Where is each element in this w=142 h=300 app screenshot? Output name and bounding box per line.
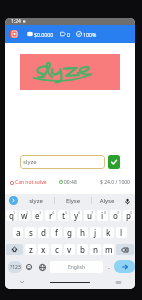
button[interactable]: Backspace (116, 244, 134, 255)
staticText: 7 (91, 210, 94, 215)
button[interactable]: i (97, 210, 108, 221)
staticText: b (80, 244, 85, 255)
button[interactable]: ?123 (8, 261, 22, 273)
button[interactable]: n (90, 244, 101, 255)
staticText: . (108, 262, 110, 272)
staticText: $0.0000 (34, 31, 54, 38)
staticText: 6 (78, 210, 81, 215)
button[interactable]: d (38, 227, 49, 238)
staticText: v (67, 244, 72, 255)
staticText: ?123 (10, 264, 21, 271)
staticText: 3 (39, 210, 42, 215)
staticText: Can not solve (15, 179, 47, 186)
staticText: English (68, 264, 86, 271)
button[interactable]: Enter (114, 260, 135, 273)
button[interactable]: e (32, 210, 43, 221)
button[interactable]: t (58, 210, 69, 221)
button[interactable]: g (64, 227, 75, 238)
staticText: m (105, 244, 113, 255)
staticText: n (93, 244, 99, 255)
staticText: 0 (67, 31, 70, 38)
staticText: l (120, 227, 123, 238)
button[interactable]: Change language (35, 261, 50, 273)
button[interactable]: m (103, 244, 114, 255)
button[interactable]: Emoji (22, 261, 35, 273)
staticText: 1:24 (11, 18, 21, 25)
staticText: q (9, 210, 14, 221)
button[interactable]: Elyse (55, 197, 91, 205)
staticText: 8 (104, 210, 107, 215)
button[interactable]: Voice input (122, 196, 132, 206)
staticText: z (29, 244, 33, 255)
staticText: w (21, 210, 28, 221)
staticText: c (55, 244, 59, 255)
button[interactable]: English (50, 261, 103, 273)
button[interactable]: . (103, 261, 114, 273)
button[interactable]: k (103, 227, 114, 238)
staticText: g (67, 227, 72, 238)
button[interactable]: Shift (6, 244, 23, 255)
button[interactable]: w (19, 210, 30, 221)
staticText: x (41, 244, 46, 255)
staticText: k (106, 227, 111, 238)
staticText: 4 (52, 210, 55, 215)
staticText: f (55, 227, 58, 238)
staticText: 9 (117, 210, 120, 215)
button[interactable]: z (25, 244, 36, 255)
staticText: 5 (65, 210, 68, 215)
button[interactable]: j (90, 227, 101, 238)
staticText: slyze (23, 158, 37, 166)
staticText: t (62, 210, 66, 221)
button[interactable]: f (51, 227, 62, 238)
button[interactable]: Alyse (92, 197, 122, 205)
staticText: 1 (13, 210, 16, 215)
staticText: i (101, 210, 104, 221)
staticText: r (49, 210, 53, 221)
staticText: 0 (130, 210, 133, 215)
button[interactable]: v (64, 244, 75, 255)
staticText: o (113, 210, 118, 221)
staticText: 2 (26, 210, 29, 215)
staticText: s (29, 227, 33, 238)
button[interactable]: Hide keyboard (5, 275, 39, 289)
button[interactable]: h (77, 227, 88, 238)
staticText: 00:48 (64, 179, 77, 186)
button[interactable]: o (110, 210, 121, 221)
staticText: h (80, 227, 86, 238)
button[interactable]: Can not solve (10, 179, 47, 186)
button[interactable]: Switch keyboard (101, 275, 135, 289)
button[interactable]: Submit (108, 155, 120, 169)
button[interactable]: More suggestions (9, 196, 18, 205)
button[interactable]: Stop (10, 30, 18, 38)
button[interactable]: y (71, 210, 82, 221)
button[interactable]: slyze (20, 155, 105, 169)
button[interactable]: x (38, 244, 49, 255)
staticText: j (94, 227, 97, 238)
button[interactable]: l (116, 227, 127, 238)
button[interactable]: b (77, 244, 88, 255)
button[interactable]: q (6, 210, 17, 221)
button[interactable]: s (25, 227, 36, 238)
button[interactable]: a (13, 227, 23, 238)
button[interactable]: p (123, 210, 134, 221)
staticText: e (35, 210, 40, 221)
staticText: 100% (83, 31, 97, 38)
staticText: a (16, 227, 21, 238)
staticText: p (126, 210, 131, 221)
staticText: d (41, 227, 46, 238)
button[interactable]: slyze (18, 197, 54, 205)
button[interactable]: u (84, 210, 95, 221)
staticText: $ 24.0 / 1000 (100, 179, 130, 186)
staticText: y (74, 210, 79, 221)
staticText: u (87, 210, 93, 221)
button[interactable]: r (45, 210, 56, 221)
button[interactable]: c (51, 244, 62, 255)
